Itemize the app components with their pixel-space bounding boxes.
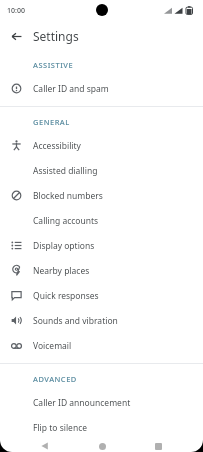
button[interactable]: Caller ID announcement <box>0 390 203 415</box>
button[interactable]: Sounds and vibration <box>0 308 203 333</box>
button[interactable]: Display options <box>0 233 203 258</box>
staticText: ASSISTIVE <box>33 60 74 70</box>
button[interactable]: Blocked numbers <box>0 183 203 208</box>
staticText: GENERAL <box>33 117 70 127</box>
button[interactable]: Home <box>93 440 111 452</box>
staticText: ADVANCED <box>33 374 77 384</box>
button[interactable]: Assisted dialling <box>0 158 203 183</box>
staticText: Settings <box>33 28 79 44</box>
staticText: Nearby places <box>33 265 90 277</box>
staticText: Blocked numbers <box>33 190 103 202</box>
staticText: Flip to silence <box>33 422 88 434</box>
staticText: Display options <box>33 240 95 252</box>
staticText: Calling accounts <box>33 215 99 227</box>
button[interactable]: Nearby places <box>0 258 203 283</box>
staticText: Sounds and vibration <box>33 315 118 327</box>
staticText: Caller ID announcement <box>33 397 131 409</box>
button[interactable]: Recent apps <box>149 440 167 452</box>
staticText: Assisted dialling <box>33 165 98 177</box>
button[interactable]: Navigate up <box>0 22 33 50</box>
button[interactable]: Flip to silence <box>0 415 203 440</box>
button[interactable]: Back <box>36 440 54 452</box>
staticText: Accessibility <box>33 140 81 152</box>
button[interactable]: Accessibility <box>0 133 203 158</box>
button[interactable]: Quick responses <box>0 283 203 308</box>
staticText: Caller ID and spam <box>33 83 109 95</box>
staticText: Quick responses <box>33 290 99 302</box>
button[interactable]: Caller ID and spam <box>0 76 203 101</box>
button[interactable]: Voicemail <box>0 333 203 358</box>
staticText: 10:00 <box>7 6 25 16</box>
staticText: Voicemail <box>33 340 72 352</box>
button[interactable]: Calling accounts <box>0 208 203 233</box>
